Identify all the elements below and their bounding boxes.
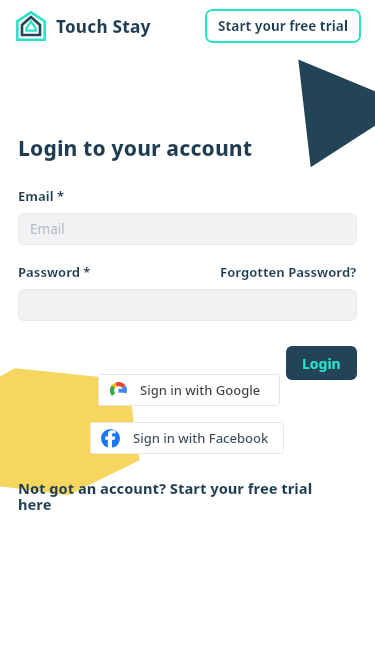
button[interactable]: Google: [98, 374, 280, 406]
button[interactable]: Forgotten Password?: [220, 263, 357, 281]
staticText: Email: [30, 220, 65, 238]
staticText: Sign in with Facebook: [133, 429, 269, 447]
staticText: Sign in with Google: [140, 381, 261, 399]
staticText: Forgotten Password?: [220, 263, 357, 281]
staticText: Start your free trial: [218, 17, 348, 35]
button[interactable]: Email: [18, 213, 357, 245]
button[interactable]: Touch Stay logo: [16, 11, 151, 41]
button[interactable]: Start your free trial: [205, 9, 361, 43]
other: Google: [110, 382, 127, 399]
staticText: Login to your account: [18, 134, 253, 163]
staticText: Touch Stay: [56, 15, 151, 38]
staticText: Login: [302, 354, 341, 373]
other: Touch Stay logo: [16, 11, 46, 41]
other: Facebook: [101, 429, 120, 448]
staticText: Email *: [18, 187, 64, 205]
staticText: Not got an account? Start your free tria…: [18, 478, 348, 515]
button[interactable]: Facebook: [90, 422, 284, 454]
button[interactable]: Login: [286, 346, 357, 380]
button[interactable]: Not got an account? Start your free tria…: [18, 478, 348, 515]
staticText: Password *: [18, 263, 91, 281]
